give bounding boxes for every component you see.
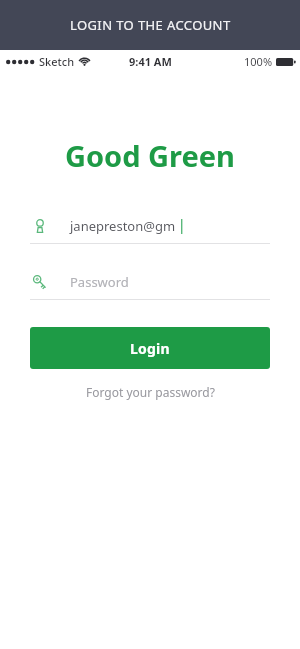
staticText: 100% (244, 54, 273, 69)
button[interactable]: Password field (30, 268, 270, 300)
staticText: janepreston@gm (70, 217, 176, 235)
button[interactable]: Forgot your password? (76, 380, 225, 404)
staticText: Sketch (39, 54, 75, 69)
staticText: Forgot your password? (86, 384, 215, 400)
button[interactable]: Login (30, 327, 270, 369)
staticText: LOGIN TO THE ACCOUNT (70, 16, 231, 34)
staticText: Password (70, 273, 129, 291)
button[interactable]: Email address field (30, 212, 270, 244)
staticText: Good Green (65, 136, 235, 175)
staticText: 9:41 AM (129, 54, 172, 69)
staticText: Login (130, 339, 170, 358)
